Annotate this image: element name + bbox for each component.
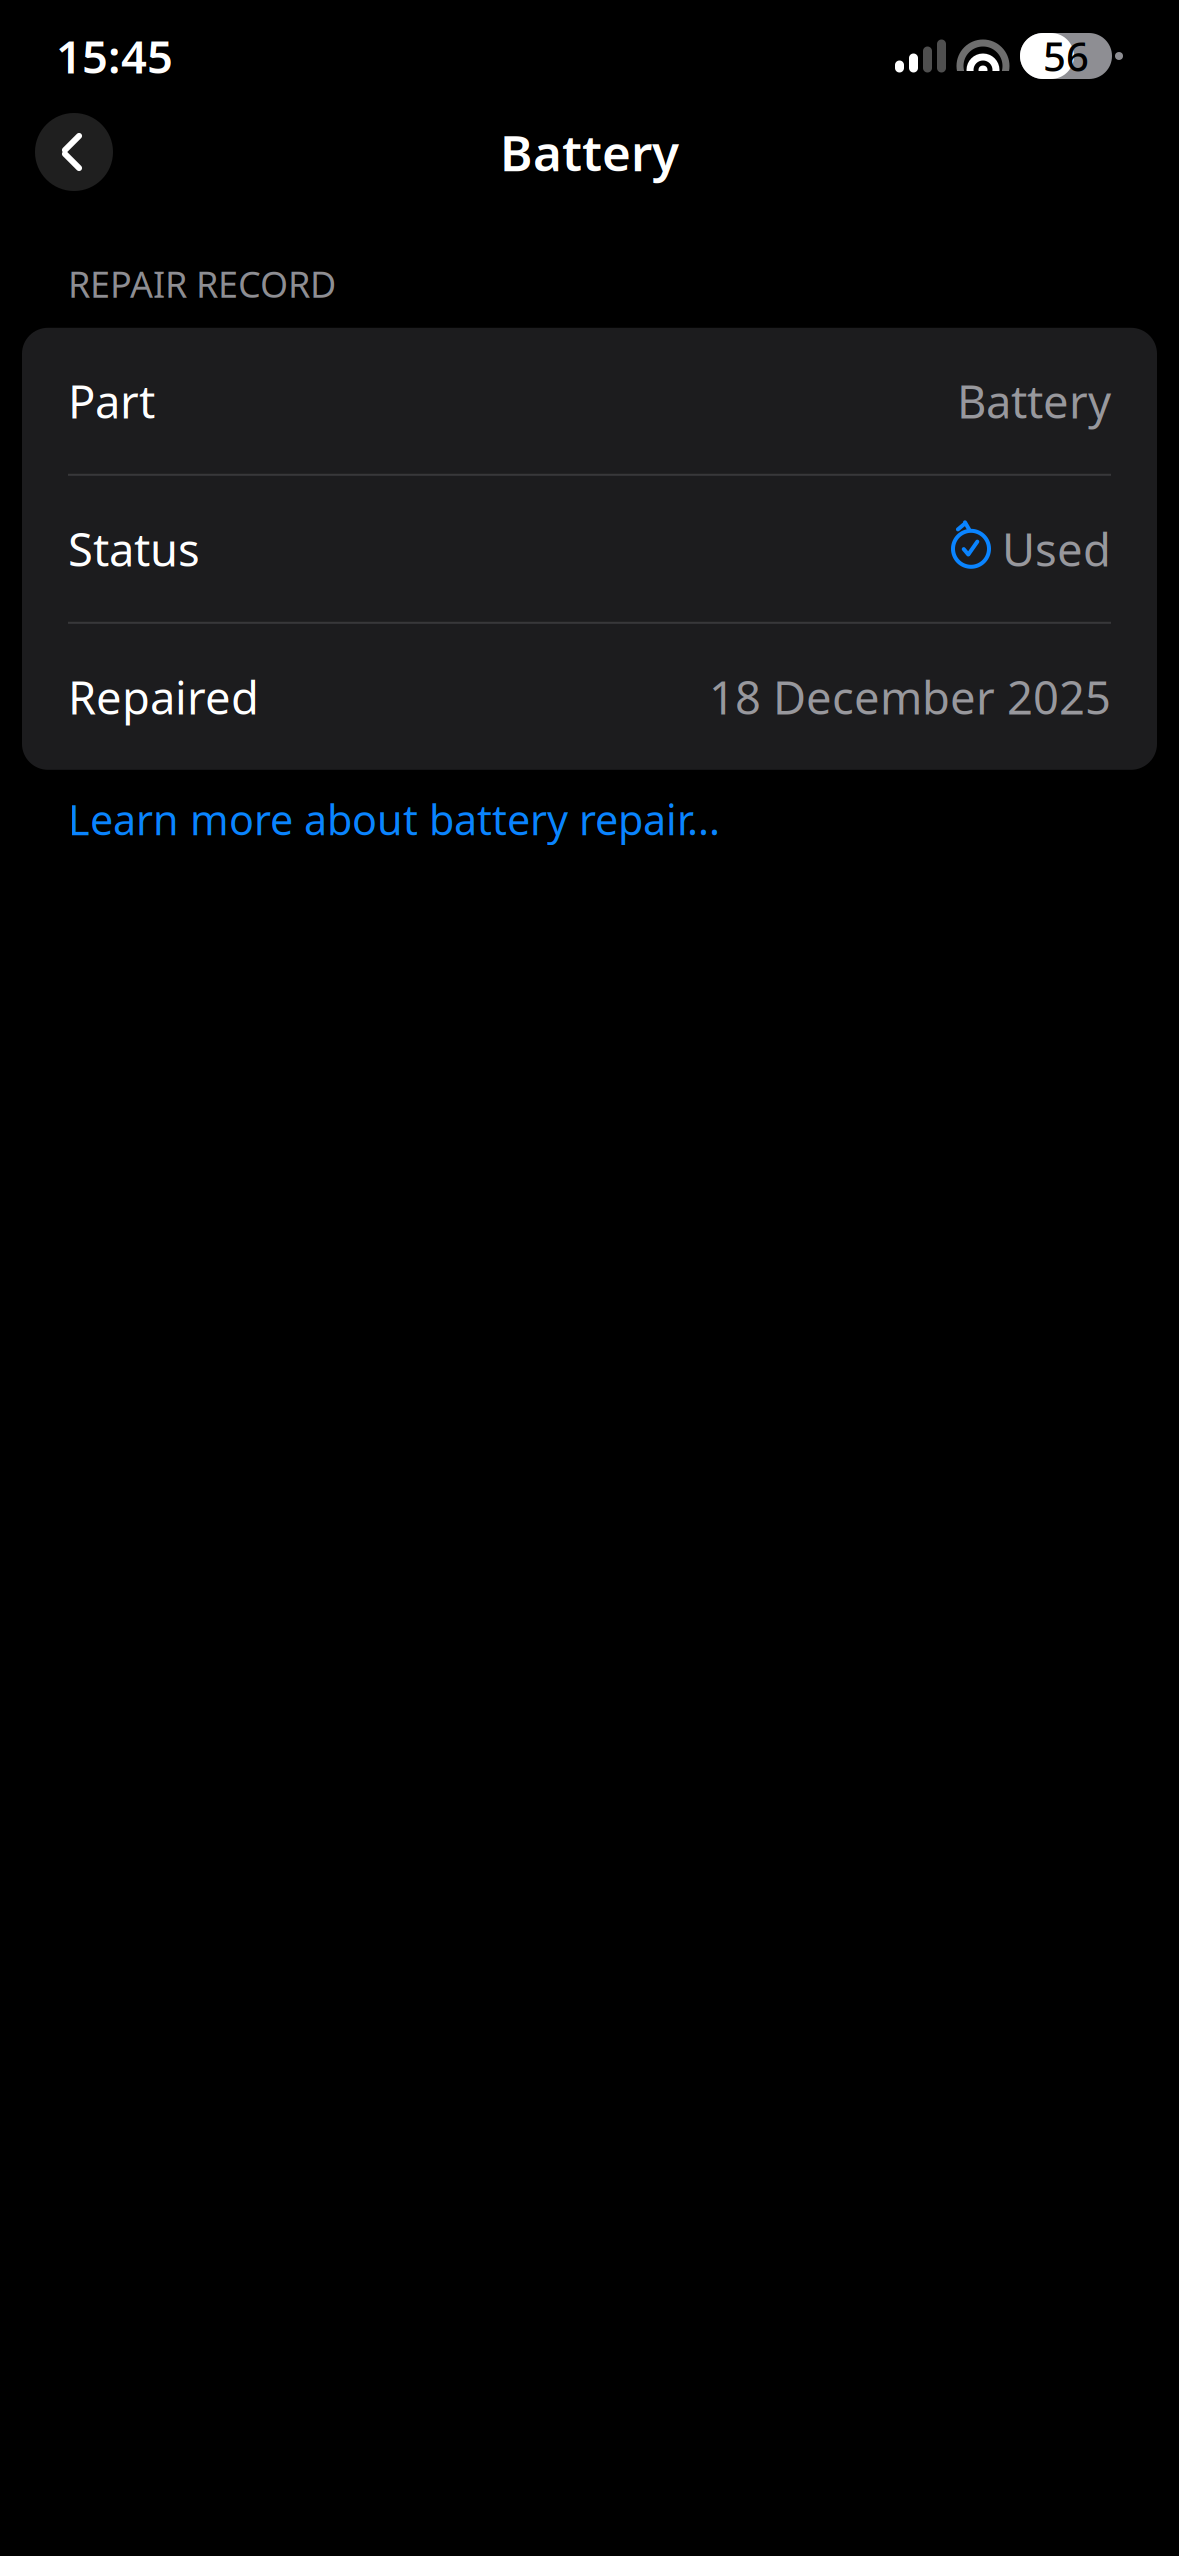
staticText: Status (68, 519, 200, 579)
staticText: REPAIR RECORD (68, 260, 336, 308)
staticText: Battery (957, 371, 1111, 431)
button[interactable]: Back (28, 106, 120, 198)
staticText: Battery (500, 119, 679, 185)
staticText: Used (1002, 519, 1111, 579)
button[interactable]: Learn more about battery repair... (22, 770, 720, 857)
staticText: Part (68, 371, 155, 431)
staticText: 18 December 2025 (709, 667, 1111, 727)
staticText: 56 (1043, 29, 1089, 82)
staticText: 15:45 (56, 26, 173, 86)
staticText: Repaired (68, 667, 259, 727)
staticText: Learn more about battery repair... (68, 792, 720, 847)
